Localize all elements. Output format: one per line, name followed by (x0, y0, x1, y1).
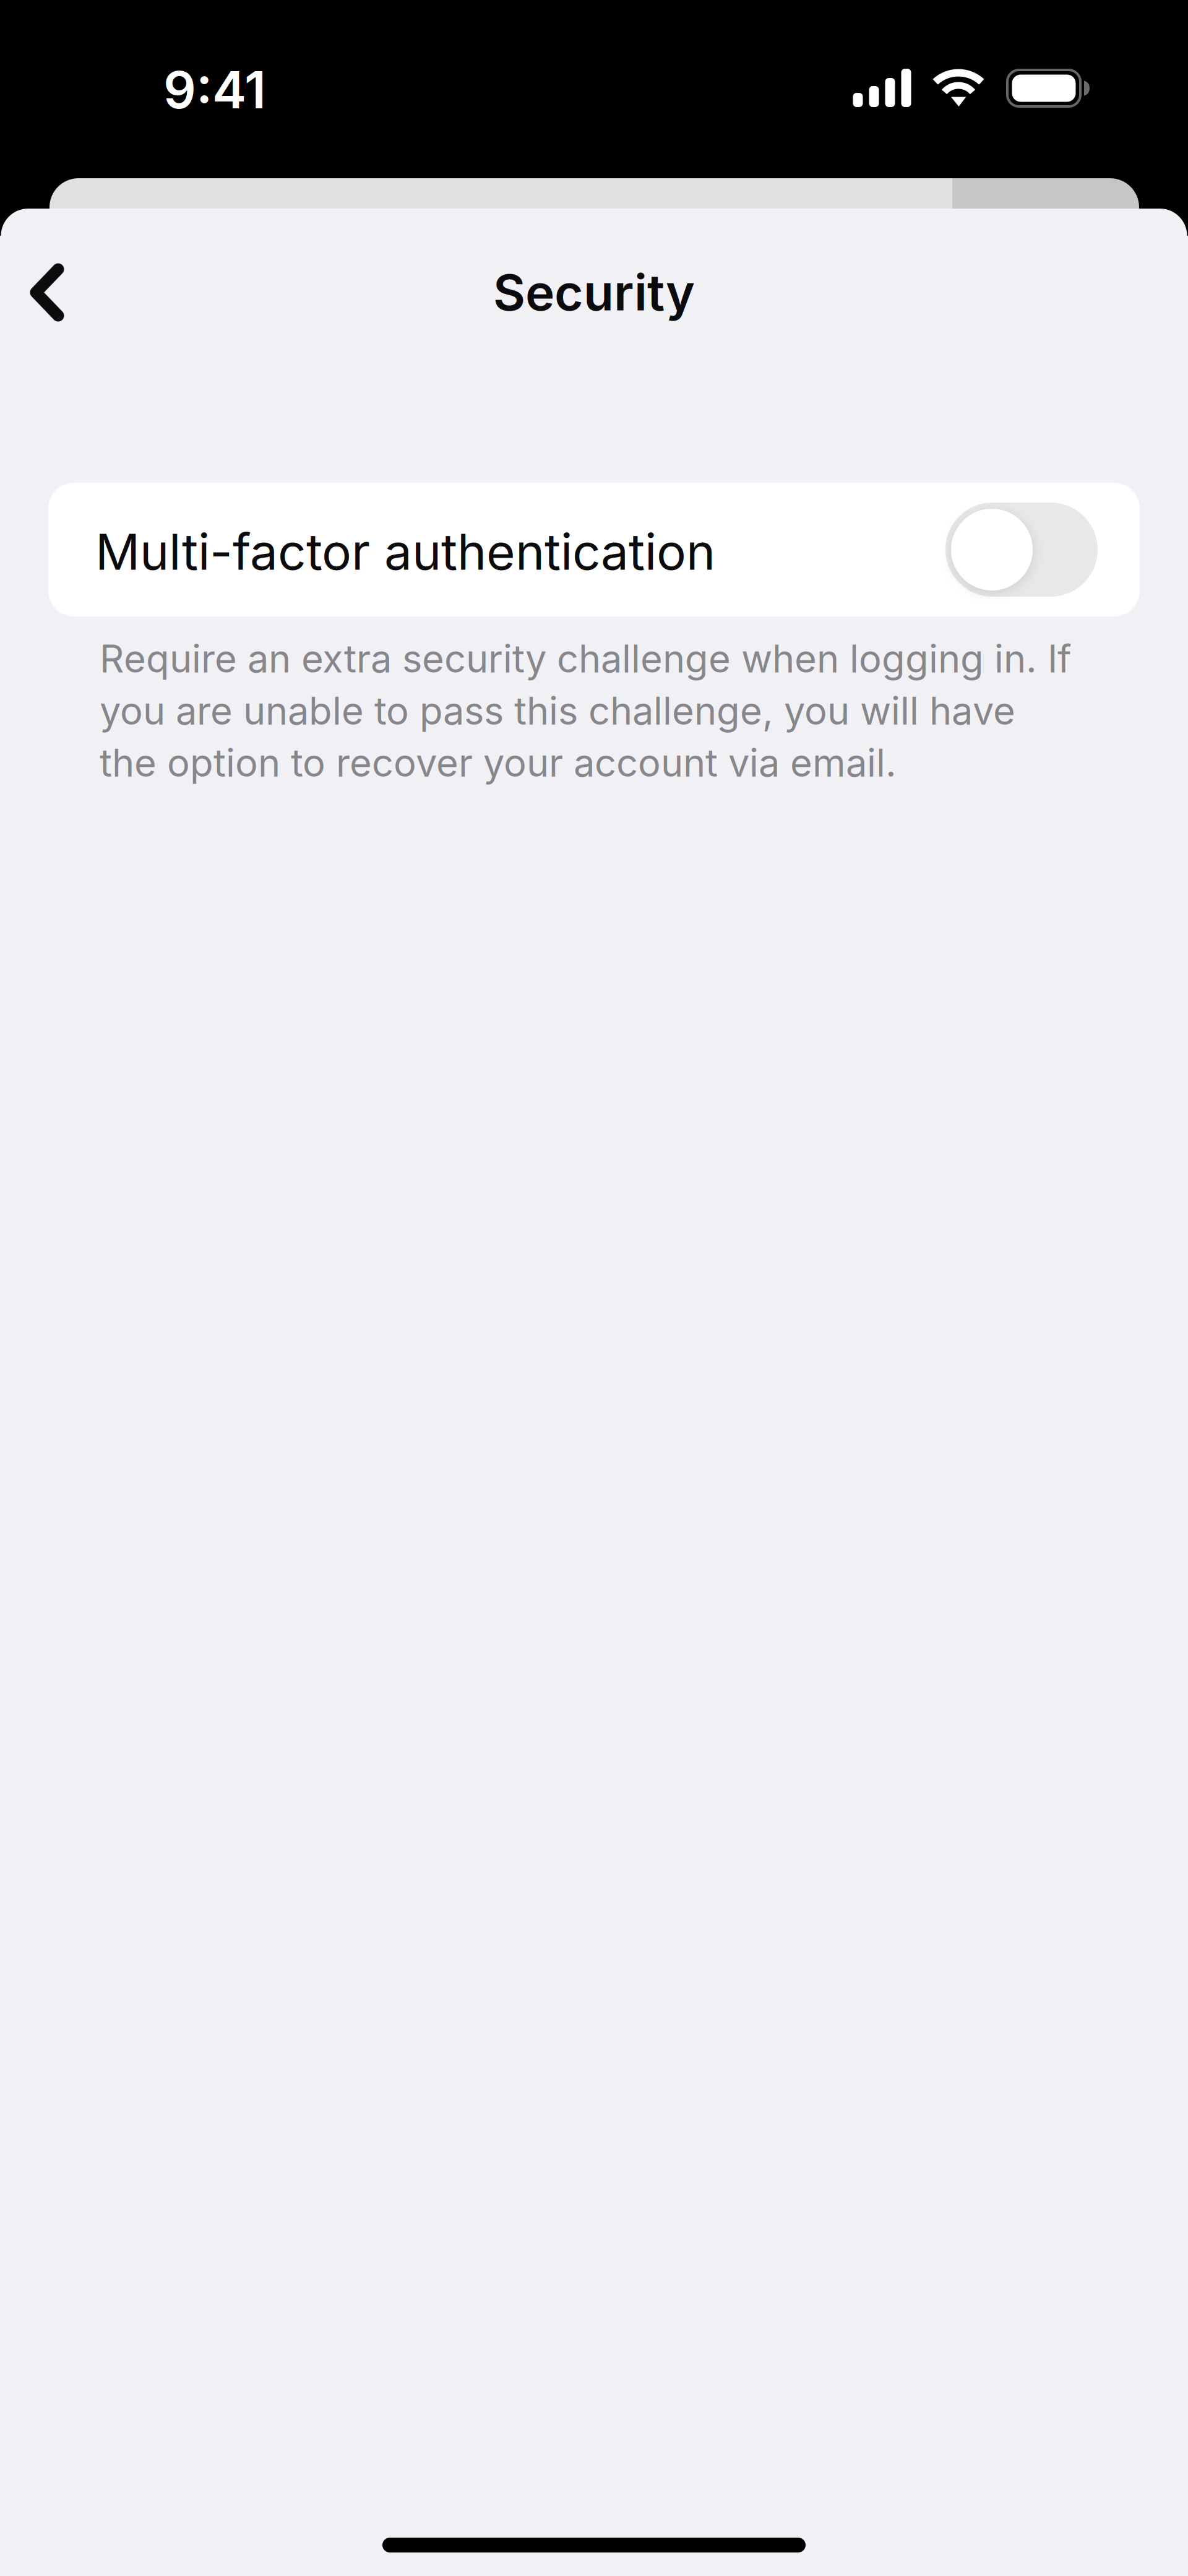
staticText: 9:41 (163, 59, 266, 121)
button[interactable]: Multi-factor authentication (48, 483, 1140, 616)
button[interactable]: Back (1, 238, 108, 347)
staticText: Multi-factor authentication (95, 522, 715, 582)
staticText: Security (493, 262, 695, 322)
staticText: Require an extra security challenge when… (100, 636, 1072, 786)
